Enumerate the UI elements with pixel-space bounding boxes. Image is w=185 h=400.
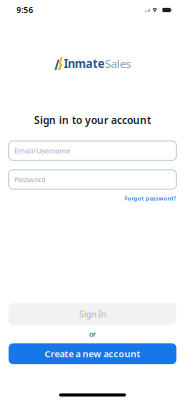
staticText: Inmate: [64, 56, 105, 71]
staticText: Sign In: [79, 308, 106, 320]
staticText: Forgot password?: [124, 194, 176, 202]
button[interactable]: Sign In: [9, 303, 176, 325]
staticText: Sign in to your account: [34, 113, 151, 127]
staticText: Password: [14, 175, 45, 184]
button[interactable]: Create a new account: [9, 343, 176, 364]
staticText: or: [89, 329, 96, 339]
staticText: Create a new account: [44, 347, 140, 360]
staticText: 9:56: [16, 5, 33, 15]
staticText: Email/Username: [14, 146, 70, 156]
staticText: Sales: [105, 56, 131, 71]
button[interactable]: Forgot password?: [124, 194, 176, 202]
